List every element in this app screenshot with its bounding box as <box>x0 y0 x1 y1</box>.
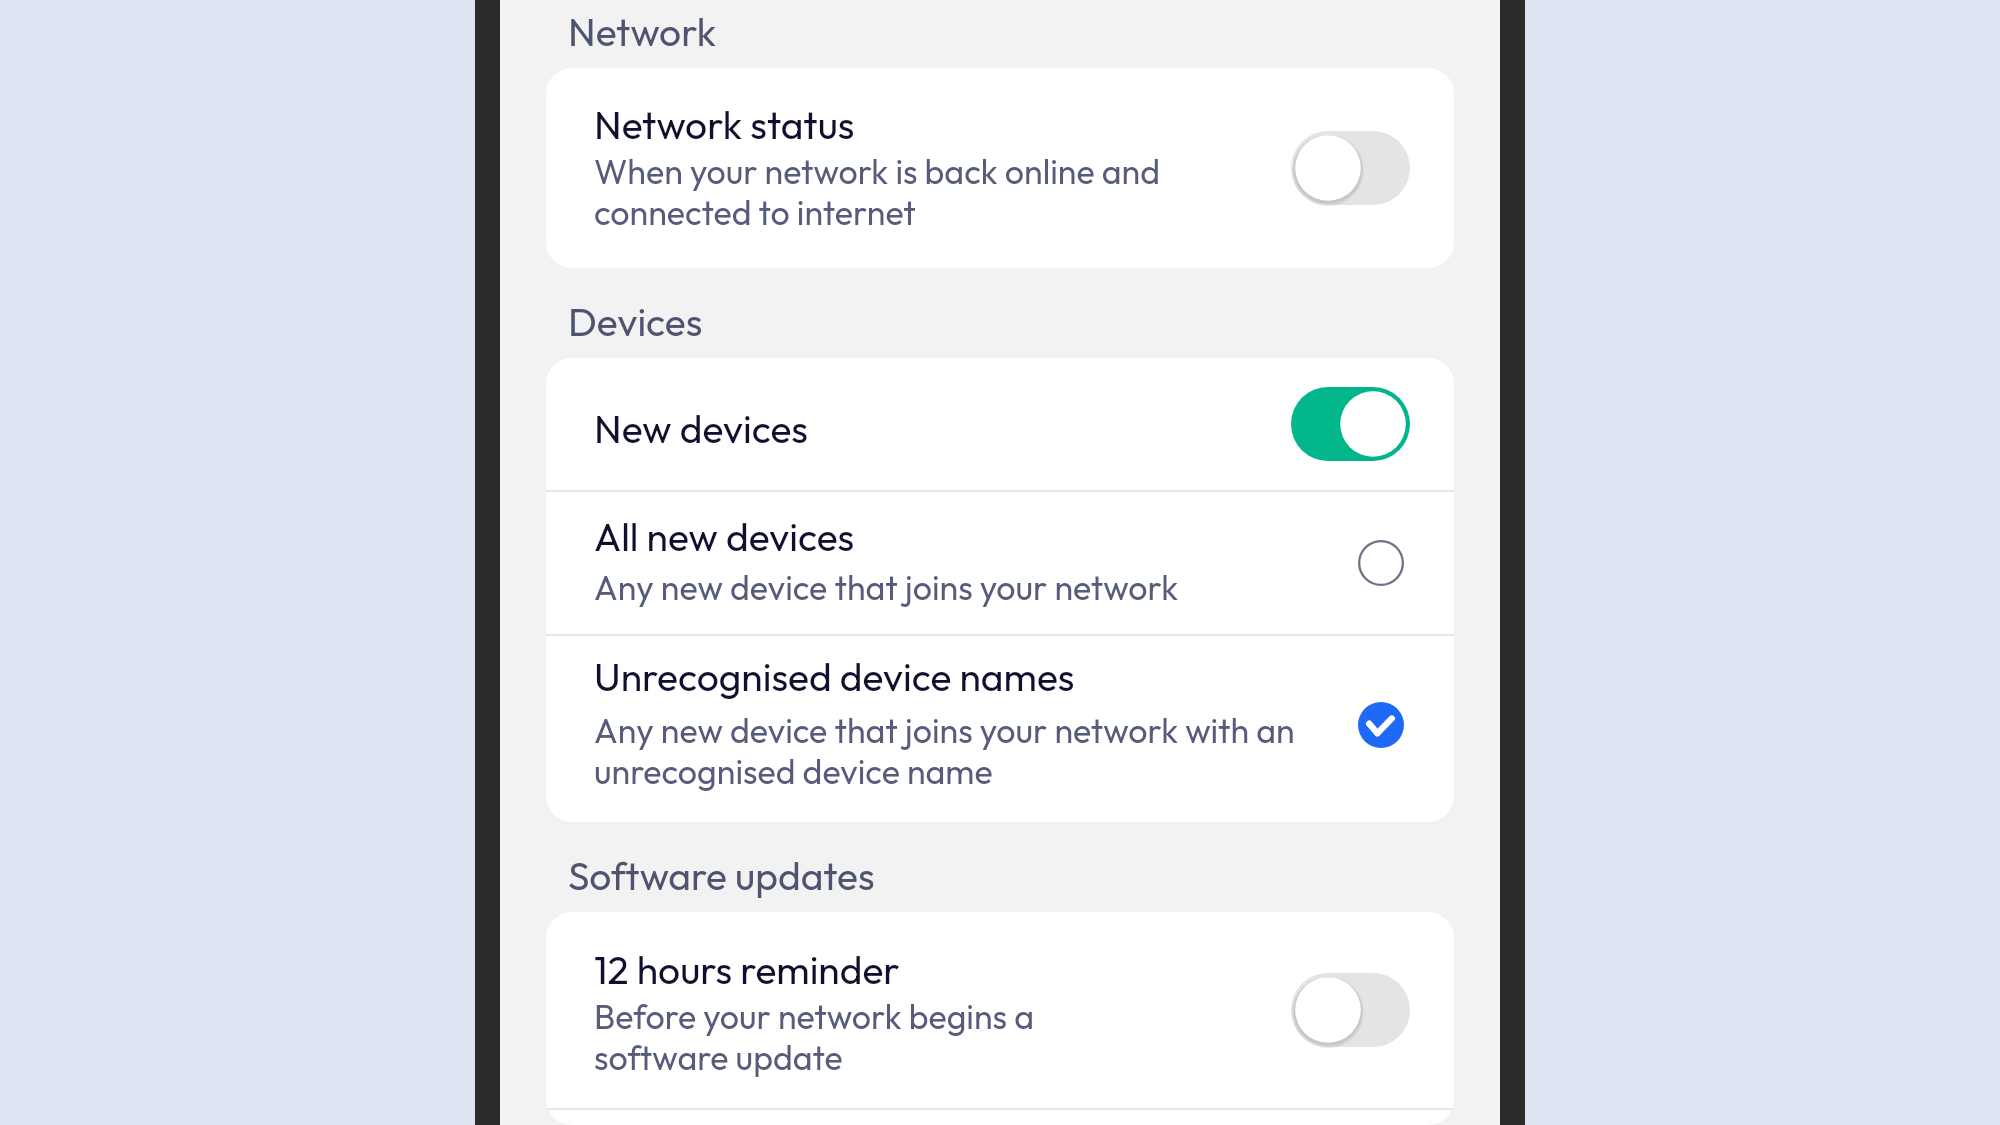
button[interactable]: 12 hours reminder <box>546 912 1454 1108</box>
staticText: When your network is back online and con… <box>594 151 1160 233</box>
staticText: Network status <box>594 101 855 149</box>
button[interactable]: All new devices, not selected <box>1291 526 1410 600</box>
staticText: Any new device that joins your network <box>594 567 1179 608</box>
staticText: 12 hours reminder <box>594 946 900 994</box>
staticText: Network <box>568 7 717 56</box>
button[interactable]: Network status <box>546 68 1454 268</box>
button[interactable]: New devices, on <box>1291 387 1410 461</box>
staticText: Before your network begins a software up… <box>594 996 1034 1078</box>
staticText: Devices <box>568 297 703 346</box>
staticText: New devices <box>594 405 808 453</box>
button[interactable]: Unrecognised device names <box>546 636 1454 822</box>
staticText: All new devices <box>594 513 855 561</box>
button[interactable]: Network status, off <box>1291 131 1410 205</box>
button[interactable]: New devices <box>546 358 1454 490</box>
button[interactable]: 12 hours reminder, off <box>1291 973 1410 1047</box>
button[interactable]: All new devices <box>546 492 1454 634</box>
staticText: Unrecognised device names <box>594 653 1075 701</box>
staticText: Software updates <box>568 851 875 900</box>
button[interactable]: Unrecognised device names, selected <box>1291 692 1410 766</box>
staticText: Any new device that joins your network w… <box>594 710 1275 792</box>
